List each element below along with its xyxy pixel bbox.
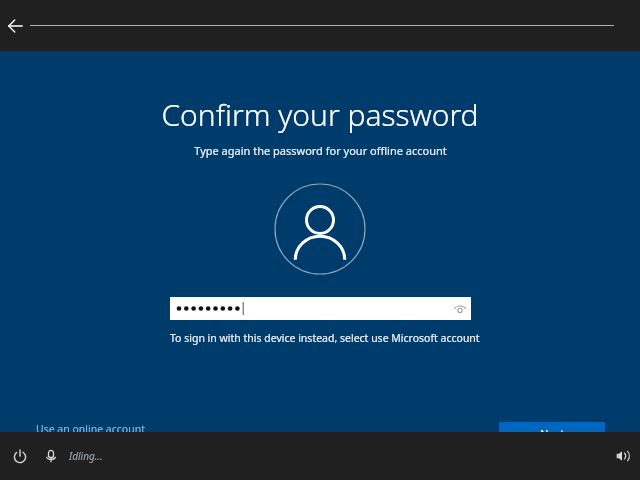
button[interactable]: Back [2, 13, 28, 39]
staticText: Use an online account [36, 422, 145, 436]
staticText: Type again the password for your offline… [194, 143, 447, 158]
staticText: To sign in with this device instead, sel… [170, 331, 480, 345]
button[interactable]: Show password [449, 298, 471, 320]
staticText: Next [540, 426, 565, 441]
button[interactable]: Show password [170, 297, 471, 320]
staticText: Idling... [69, 449, 103, 463]
button[interactable]: Next [499, 422, 605, 445]
button[interactable]: Power [8, 444, 32, 468]
button[interactable]: Volume [610, 444, 634, 468]
button[interactable]: Microphone [39, 444, 63, 468]
staticText: Confirm your password [161, 94, 479, 135]
button[interactable]: Use an online account [30, 419, 151, 439]
